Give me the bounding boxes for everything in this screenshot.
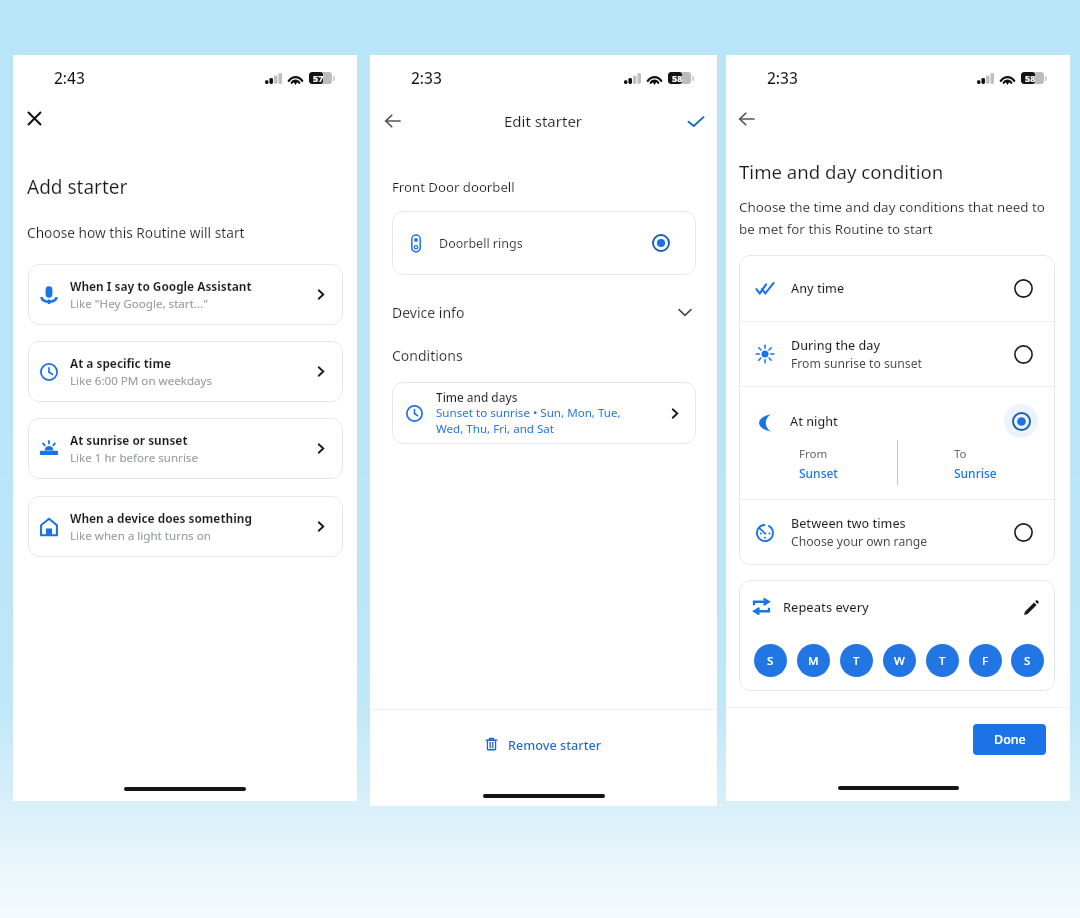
button[interactable]: At sunrise or sunset (28, 418, 343, 479)
button[interactable]: At a specific time (28, 341, 343, 402)
staticText: Choose the time and day conditions that … (739, 198, 1056, 238)
staticText: Choose your own range (791, 533, 928, 550)
staticText: 2:33 (767, 67, 798, 88)
button[interactable]: S (1011, 644, 1044, 677)
staticText: 2:43 (54, 67, 85, 88)
staticText: 2:33 (411, 67, 442, 88)
button[interactable]: Back (724, 97, 768, 141)
staticText: Sunrise (954, 465, 997, 481)
staticText: To (954, 446, 967, 462)
staticText: Like when a light turns on (70, 528, 211, 544)
staticText: At night (790, 413, 838, 430)
staticText: Device info (392, 303, 721, 322)
staticText: When a device does something (70, 510, 252, 526)
staticText: From (799, 446, 828, 462)
staticText: Time and day condition (739, 159, 944, 184)
button[interactable]: W (883, 644, 916, 677)
staticText: Like 6:00 PM on weekdays (70, 373, 213, 389)
staticText: T (853, 653, 860, 669)
button[interactable]: F (969, 644, 1002, 677)
staticText: M (808, 653, 819, 669)
button[interactable]: Any time (739, 255, 1055, 321)
button[interactable]: Edit (1016, 592, 1046, 622)
button[interactable]: When a device does something (28, 496, 343, 557)
staticText: Edit starter (504, 111, 583, 131)
staticText: 58 (672, 72, 683, 84)
button[interactable]: Done (973, 724, 1046, 755)
staticText: From sunrise to sunset (791, 355, 922, 372)
staticText: F (982, 653, 989, 669)
button[interactable]: Back (370, 99, 414, 143)
button[interactable]: Doorbell rings (392, 211, 696, 275)
button[interactable]: Close (13, 97, 56, 140)
staticText: T (939, 653, 946, 669)
staticText: During the day (791, 337, 881, 354)
staticText: Between two times (791, 515, 906, 532)
button[interactable]: During the day (739, 322, 1055, 386)
staticText: Choose how this Routine will start (27, 223, 245, 242)
staticText: Any time (791, 280, 845, 297)
staticText: Remove starter (508, 736, 602, 753)
staticText: Done (994, 731, 1026, 748)
staticText: Time and days (436, 389, 518, 405)
staticText: Add starter (27, 174, 128, 200)
button[interactable]: Remove starter (370, 721, 717, 767)
button[interactable]: M (797, 644, 830, 677)
staticText: At sunrise or sunset (70, 432, 188, 448)
button[interactable]: Device info (370, 295, 717, 329)
button[interactable]: When I say to Google Assistant (28, 264, 343, 325)
staticText: When I say to Google Assistant (70, 278, 252, 294)
staticText: Conditions (392, 346, 463, 365)
staticText: Like "Hey Google, start..." (70, 296, 208, 312)
staticText: W (894, 653, 905, 669)
staticText: S (767, 653, 774, 669)
button[interactable]: T (840, 644, 873, 677)
staticText: At a specific time (70, 355, 171, 371)
staticText: Repeats every (783, 598, 1025, 615)
button[interactable]: T (926, 644, 959, 677)
staticText: Front Door doorbell (392, 178, 515, 196)
button[interactable]: Between two times (739, 500, 1055, 565)
staticText: S (1024, 653, 1031, 669)
button[interactable]: At night (739, 387, 1055, 499)
staticText: 58 (1025, 72, 1036, 84)
staticText: Like 1 hr before sunrise (70, 450, 198, 466)
button[interactable]: Save (674, 99, 718, 143)
button[interactable]: S (754, 644, 787, 677)
button[interactable]: Time and days (392, 382, 696, 444)
staticText: Sunset (799, 465, 838, 481)
staticText: 57 (313, 72, 324, 84)
staticText: Sunset to sunrise • Sun, Mon, Tue, Wed, … (436, 405, 633, 437)
staticText: Doorbell rings (439, 235, 625, 252)
